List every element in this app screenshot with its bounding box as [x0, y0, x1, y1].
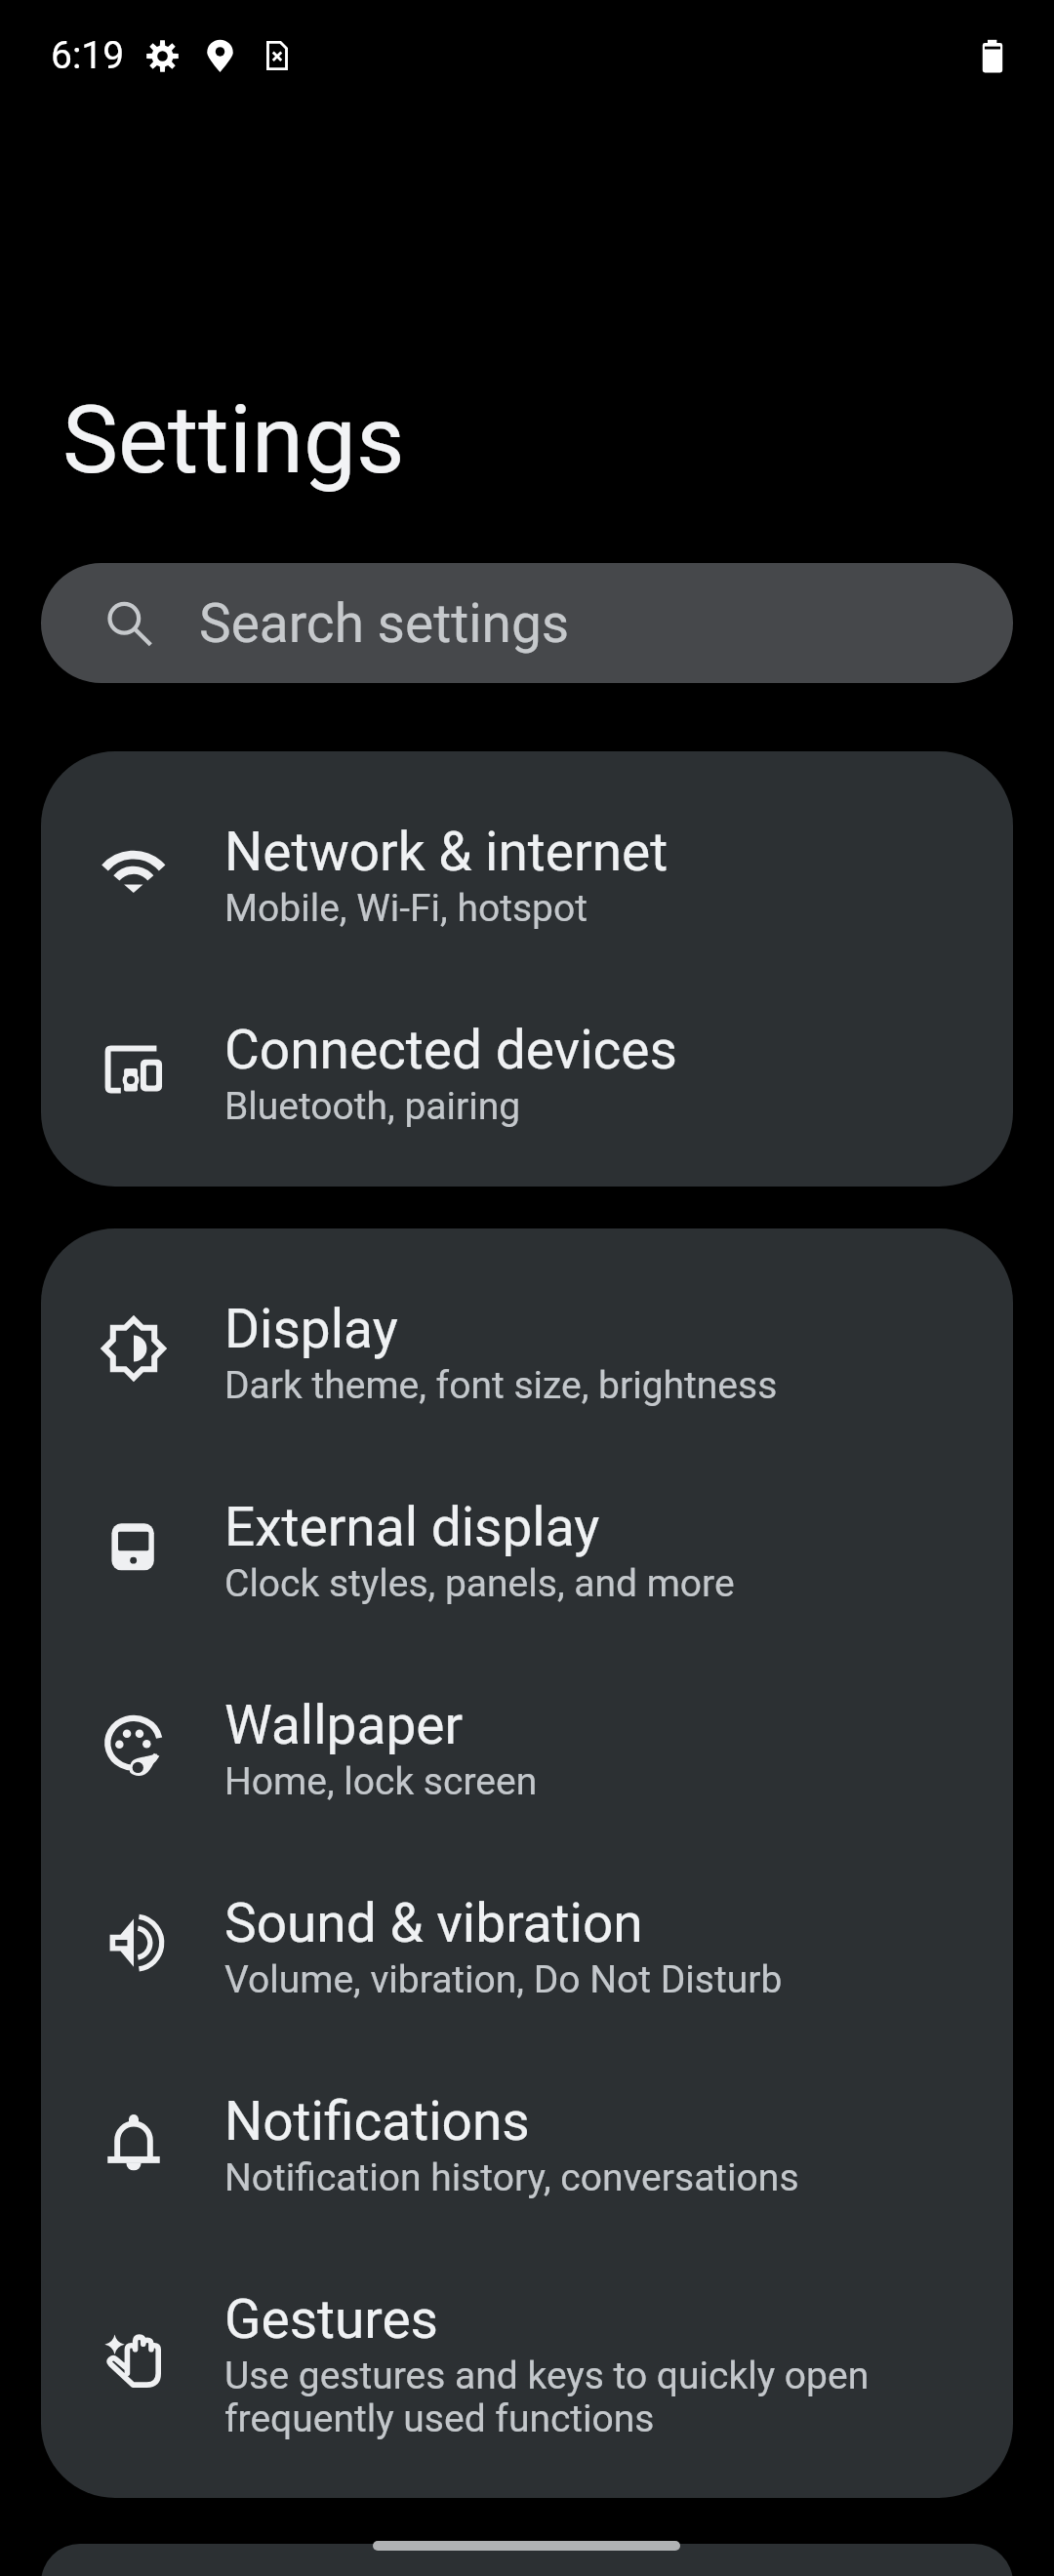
button[interactable]: Display: [41, 1248, 1013, 1446]
staticText: Settings: [62, 385, 405, 496]
button[interactable]: Notifications: [41, 2040, 1013, 2238]
staticText: Use gestures and keys to quickly open fr…: [224, 2354, 943, 2440]
button[interactable]: Gestures: [41, 2238, 1013, 2478]
staticText: Clock styles, panels, and more: [224, 1561, 735, 1606]
staticText: Bluetooth, pairing: [224, 1084, 521, 1129]
staticText: Volume, vibration, Do Not Disturb: [224, 1957, 783, 2002]
staticText: Wallpaper: [224, 1694, 464, 1756]
staticText: Network & internet: [224, 821, 669, 883]
button[interactable]: External display: [41, 1446, 1013, 1644]
staticText: External display: [224, 1496, 600, 1558]
staticText: Mobile, Wi-Fi, hotspot: [224, 886, 588, 931]
staticText: 6:19: [51, 33, 125, 78]
staticText: Search settings: [199, 592, 570, 655]
button[interactable]: Wallpaper: [41, 1644, 1013, 1842]
staticText: Connected devices: [224, 1019, 677, 1081]
button[interactable]: Search settings: [41, 563, 1013, 683]
staticText: Notification history, conversations: [224, 2155, 799, 2200]
button[interactable]: Network & internet: [41, 771, 1013, 969]
staticText: Gestures: [224, 2288, 439, 2351]
staticText: Sound & vibration: [224, 1892, 643, 1954]
button[interactable]: Connected devices: [41, 969, 1013, 1167]
staticText: Dark theme, font size, brightness: [224, 1363, 778, 1408]
staticText: Notifications: [224, 2090, 530, 2153]
button[interactable]: Sound & vibration: [41, 1842, 1013, 2040]
staticText: Display: [224, 1298, 398, 1360]
staticText: Home, lock screen: [224, 1759, 538, 1804]
